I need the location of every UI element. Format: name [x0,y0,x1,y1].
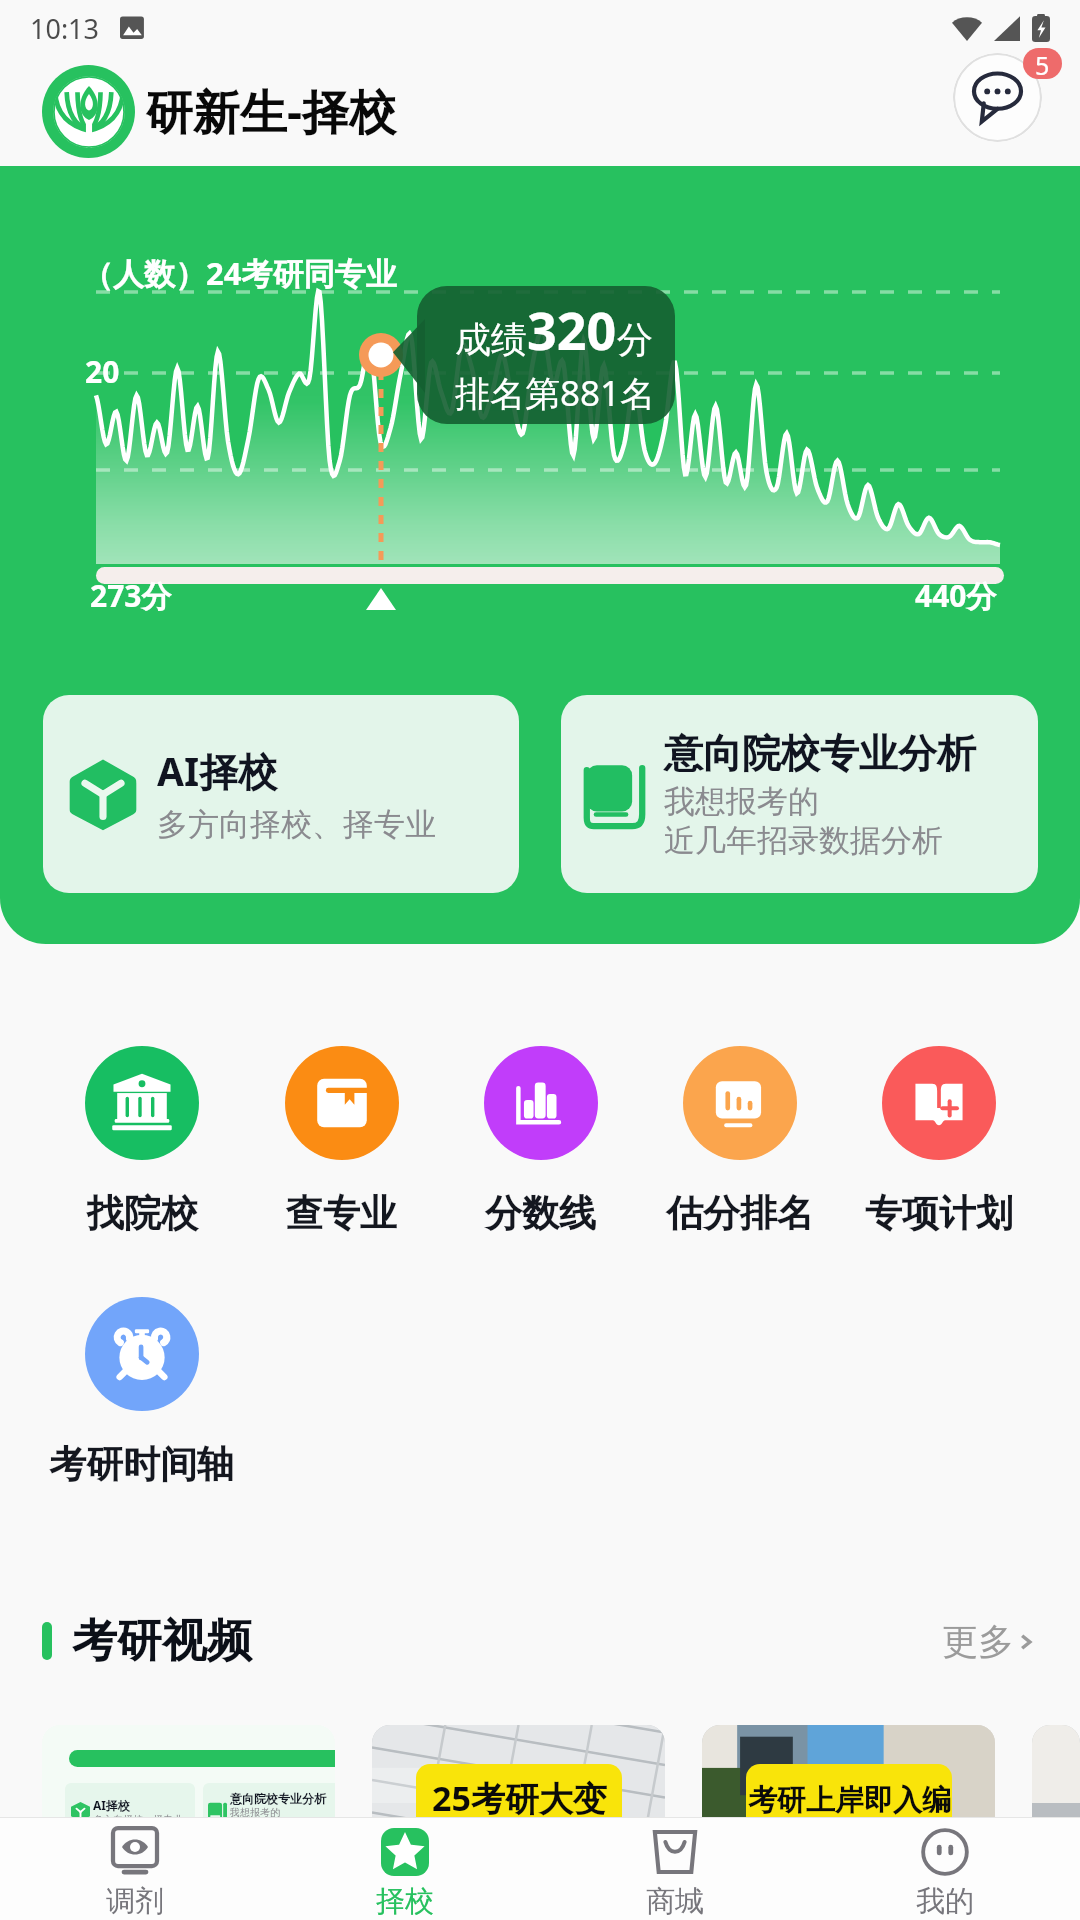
button[interactable]: 我的 [810,1826,1080,1920]
button[interactable]: 估分排名 [640,1046,839,1237]
staticText: 分 [617,317,653,362]
button[interactable]: 考研上岸即入编 [702,1725,995,1920]
button[interactable]: 意向院校专业分析 [561,695,1038,893]
button[interactable]: 25考研大变 [372,1725,665,1920]
staticText: 20 [85,351,120,392]
staticText: 5 [1035,48,1050,79]
staticText: 考研上岸即入编 [748,1782,951,1819]
staticText: 273分 [90,575,172,616]
staticText: 意向院校专业分析 [230,1791,326,1806]
button[interactable]: 专项计划 [839,1046,1038,1237]
staticText: AI择校 [157,744,278,797]
staticText: 440分 [915,575,997,616]
button[interactable]: 更多 [942,1619,1038,1664]
staticText: 调剂 [106,1883,164,1920]
staticText: 择校 [376,1883,434,1920]
staticText: 25考研大变 [432,1775,607,1821]
staticText: 查专业 [286,1190,397,1237]
staticText: 意向院校专业分析 [664,729,976,778]
button[interactable]: Logo [42,65,135,158]
button[interactable]: 找院校 [42,1046,242,1237]
button[interactable]: 调剂 [0,1826,270,1920]
staticText: 320 [527,294,617,365]
staticText: 商城 [646,1883,704,1920]
staticText: AI择校 [93,1797,130,1813]
button[interactable]: AI择校 [42,1725,335,1920]
staticText: 多方向择校、择专业 [93,1813,183,1826]
button[interactable]: AI择校 [43,695,519,893]
staticText: 这些学校真的牛 [748,1819,951,1856]
button[interactable]: 分数线 [441,1046,640,1237]
staticText: 我想报考的 [230,1806,280,1819]
staticText: 10:13 [30,10,100,47]
button[interactable] [1032,1725,1080,1920]
staticText: 更多 [942,1619,1014,1664]
staticText: 分数线 [485,1190,596,1237]
staticText: 考研时间轴 [49,1441,234,1488]
button[interactable]: 查专业 [242,1046,441,1237]
button[interactable]: 商城 [540,1826,810,1920]
staticText: 这些专业停招了 [416,1821,622,1864]
staticText: 估分排名 [666,1190,814,1237]
staticText: 我想报考的 [664,782,819,821]
staticText: 多方向择校、择专业 [157,805,436,844]
button[interactable]: Messages [953,53,1042,142]
staticText: （人数）24考研同专业 [82,252,397,294]
staticText: 研新生-择校 [146,79,397,143]
staticText: 成绩 [455,317,527,362]
staticText: 排名第881名 [455,369,656,417]
staticText: 考研视频 [72,1613,252,1670]
button[interactable]: 择校 [270,1826,540,1920]
staticText: 找院校 [87,1190,198,1237]
button[interactable]: 考研时间轴 [42,1297,241,1488]
staticText: 近几年招录数据分析 [664,821,943,860]
staticText: 专项计划 [865,1190,1013,1237]
staticText: 我的 [916,1883,974,1920]
